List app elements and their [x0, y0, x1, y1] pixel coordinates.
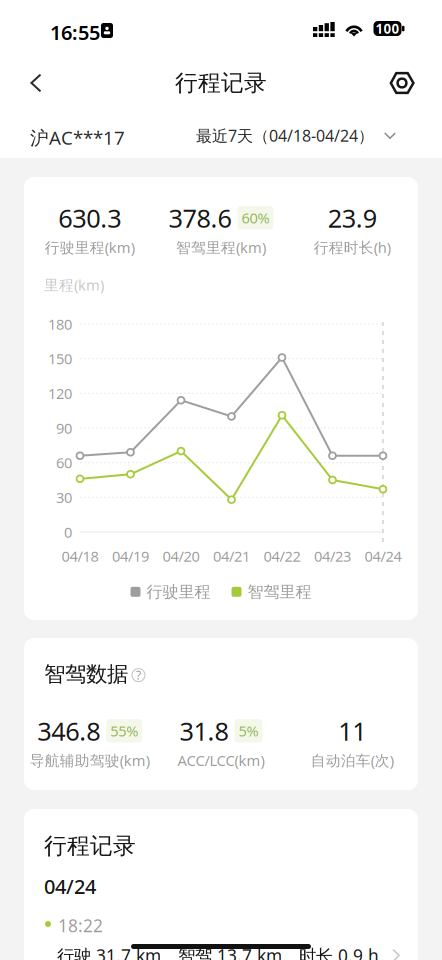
staticText: 31.8 — [179, 714, 228, 748]
staticText: 5% — [238, 721, 258, 741]
staticText: 里程(km) — [44, 275, 104, 294]
staticText: 智驾 13.7 km — [178, 944, 282, 960]
staticText: ACC/LCC(km) — [177, 751, 264, 770]
staticText: 04/24 — [364, 546, 401, 566]
staticText: 04/24 — [44, 873, 96, 900]
staticText: 0 — [64, 522, 72, 542]
staticText: 04/23 — [314, 546, 351, 566]
staticText: 行程时长(h) — [314, 238, 391, 257]
staticText: 行驶里程(km) — [45, 238, 135, 257]
staticText: 18:22 — [58, 914, 103, 937]
staticText: 100 — [375, 20, 399, 37]
staticText: 行程记录 — [44, 832, 136, 860]
staticText: 30 — [56, 488, 72, 507]
staticText: 04/22 — [263, 546, 300, 566]
staticText: 行驶里程 — [146, 582, 210, 602]
staticText: 04/18 — [61, 546, 98, 566]
staticText: 55% — [110, 721, 138, 741]
staticText: 120 — [48, 384, 72, 403]
staticText: 智驾里程(km) — [176, 238, 266, 257]
staticText: 346.8 — [37, 714, 100, 748]
staticText: 自动泊车(次) — [311, 751, 394, 770]
staticText: 23.9 — [328, 201, 377, 235]
staticText: 11 — [338, 714, 366, 748]
staticText: 150 — [48, 349, 72, 368]
staticText: 最近7天（04/18-04/24） — [196, 125, 374, 146]
staticText: 时长 0.9 h — [299, 944, 379, 960]
staticText: 04/20 — [162, 546, 199, 566]
button[interactable]: Back — [15, 60, 57, 106]
staticText: 180 — [48, 314, 72, 334]
button[interactable]: 最近7天（04/18-04/24） — [196, 116, 396, 155]
button[interactable]: Settings — [381, 60, 423, 106]
staticText: 90 — [56, 418, 72, 438]
staticText: 行驶 31.7 km — [57, 944, 161, 960]
staticText: 60% — [241, 208, 269, 228]
staticText: 378.6 — [168, 201, 231, 235]
staticText: 行程记录 — [175, 69, 267, 97]
staticText: ? — [136, 667, 141, 683]
button[interactable]: 沪AC***17 — [26, 116, 129, 159]
staticText: 智驾数据 — [44, 661, 128, 687]
staticText: 沪AC***17 — [30, 125, 125, 150]
staticText: 04/19 — [112, 546, 149, 566]
staticText: 04/21 — [213, 546, 250, 566]
staticText: 60 — [56, 453, 72, 472]
staticText: 630.3 — [58, 201, 121, 235]
button[interactable]: 18:22 — [24, 909, 418, 960]
staticText: 智驾里程 — [247, 582, 311, 602]
staticText: 16:55 — [50, 19, 100, 46]
staticText: 导航辅助驾驶(km) — [30, 751, 150, 770]
